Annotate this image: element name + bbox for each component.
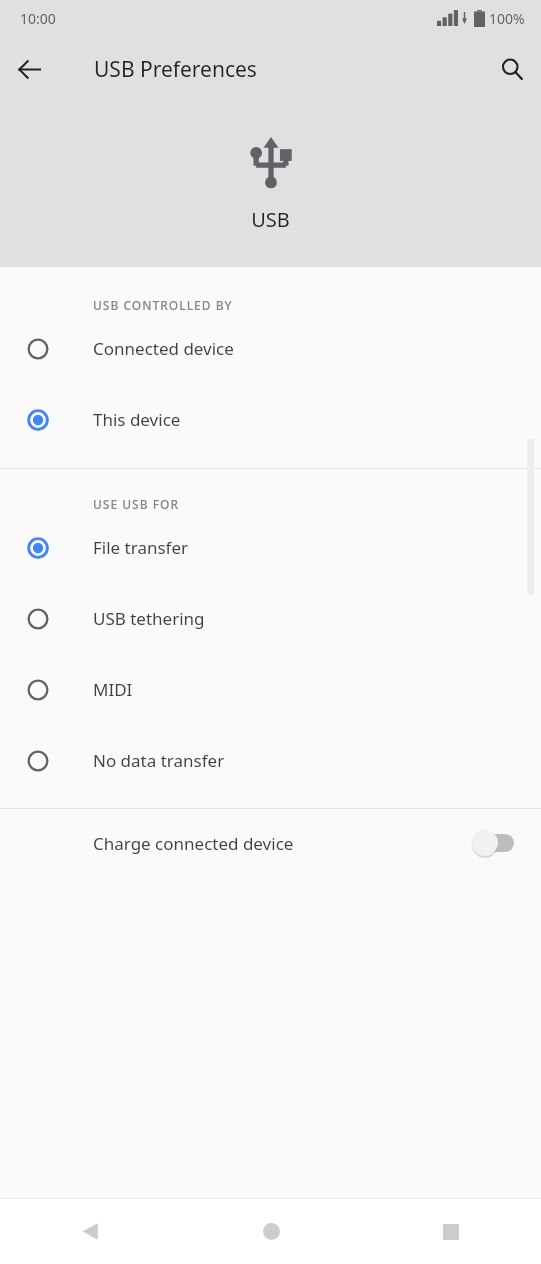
staticText: File transfer xyxy=(93,536,189,559)
button[interactable]: Recent apps xyxy=(361,1199,541,1264)
button[interactable]: MIDI xyxy=(0,654,541,725)
staticText: 10:00 xyxy=(20,9,56,28)
staticText: Connected device xyxy=(93,337,234,360)
staticText: USB Preferences xyxy=(94,55,257,84)
staticText: USB tethering xyxy=(93,607,205,630)
button[interactable]: Search xyxy=(483,40,541,98)
staticText: No data transfer xyxy=(93,749,225,772)
button[interactable]: Connected device xyxy=(0,313,541,384)
button[interactable]: No data transfer xyxy=(0,725,541,796)
button[interactable]: Charge connected device xyxy=(93,809,514,877)
staticText: 100% xyxy=(489,9,525,28)
button[interactable]: File transfer xyxy=(0,512,541,583)
staticText: This device xyxy=(93,408,181,431)
staticText: USE USB FOR xyxy=(93,496,180,512)
staticText: MIDI xyxy=(93,678,133,701)
staticText: Charge connected device xyxy=(93,832,294,855)
button[interactable]: This device xyxy=(0,384,541,455)
button[interactable]: Back xyxy=(0,1199,181,1264)
button[interactable]: Back xyxy=(0,40,58,98)
staticText: USB xyxy=(251,206,290,233)
button[interactable]: Home xyxy=(181,1199,361,1264)
staticText: USB CONTROLLED BY xyxy=(93,297,233,313)
button[interactable]: USB tethering xyxy=(0,583,541,654)
